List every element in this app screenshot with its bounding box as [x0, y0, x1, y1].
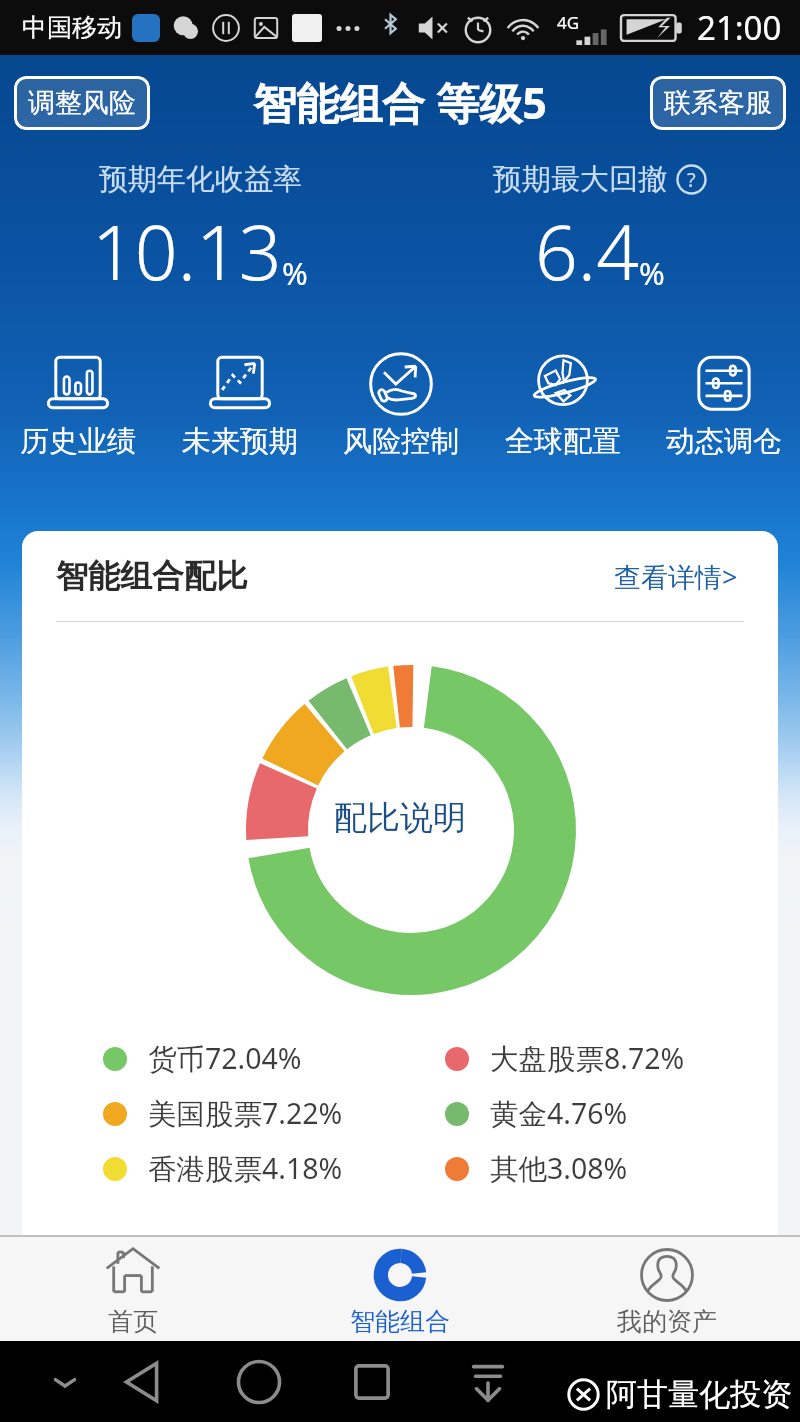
button[interactable]: 首页 [0, 1238, 266, 1341]
staticText: % [639, 252, 665, 294]
staticText: 预期最大回撤 [493, 161, 667, 198]
button[interactable]: 最近任务 [346, 1356, 398, 1408]
button[interactable]: 我的资产 [533, 1238, 800, 1341]
staticText: 4G [557, 11, 580, 34]
button[interactable]: 隐藏导航栏 [45, 1362, 85, 1402]
staticText: 历史业绩 [20, 423, 136, 455]
button[interactable]: 全球配置 [503, 347, 623, 455]
staticText: 大盘股票8.72% [490, 1039, 685, 1078]
button[interactable]: 历史业绩 [18, 347, 138, 455]
staticText: 联系客服 [664, 86, 772, 120]
staticText: ? [687, 166, 696, 193]
button[interactable]: 动态调仓 [664, 347, 784, 455]
staticText: 10.13 [92, 200, 282, 302]
staticText: 智能组合配比 [56, 556, 248, 596]
staticText: 货币72.04% [148, 1039, 302, 1078]
button[interactable]: 未来预期 [180, 347, 300, 455]
button[interactable]: 下拉通知 [464, 1358, 512, 1406]
staticText: 全球配置 [505, 423, 621, 455]
button[interactable]: 风险控制 [341, 347, 461, 455]
staticText: 首页 [108, 1306, 158, 1337]
staticText: 黄金4.76% [490, 1094, 628, 1133]
button[interactable]: 说明 [676, 164, 707, 195]
button[interactable]: 查看详情> [600, 550, 778, 603]
button[interactable]: 返回 [115, 1356, 167, 1408]
staticText: 21:00 [697, 5, 782, 50]
staticText: 动态调仓 [666, 423, 782, 455]
staticText: 智能组合 等级5 [253, 73, 547, 132]
staticText: 中国移动 [22, 12, 122, 43]
staticText: 智能组合 [350, 1306, 450, 1337]
staticText: 配比说明 [334, 797, 466, 839]
staticText: % [282, 252, 308, 294]
staticText: 6.4 [535, 200, 639, 302]
staticText: 查看详情> [614, 558, 738, 595]
button[interactable]: 智能组合 [266, 1238, 533, 1341]
button[interactable]: 调整风险 [14, 76, 150, 130]
staticText: 风险控制 [343, 423, 459, 455]
staticText: 阿甘量化投资 [606, 1375, 792, 1414]
staticText: 其他3.08% [490, 1149, 628, 1188]
staticText: 调整风险 [28, 86, 136, 120]
staticText: 预期年化收益率 [99, 161, 302, 198]
staticText: 我的资产 [617, 1306, 717, 1337]
staticText: 美国股票7.22% [148, 1094, 343, 1133]
staticText: 香港股票4.18% [148, 1149, 343, 1188]
staticText: 未来预期 [182, 423, 298, 455]
button[interactable]: 联系客服 [650, 76, 786, 130]
button[interactable]: 主屏幕 [233, 1356, 285, 1408]
